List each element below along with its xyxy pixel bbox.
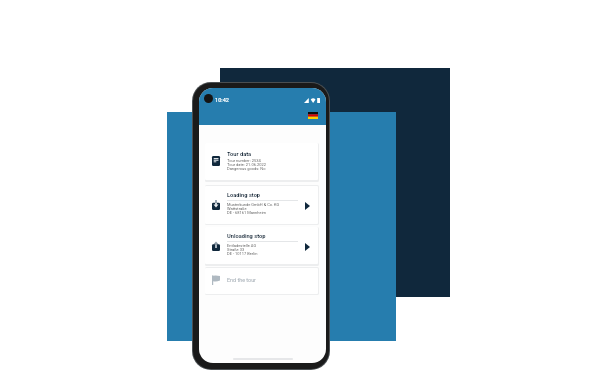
staticText: Tour number: 2534 Tour date: 21.06.2022 …: [227, 158, 266, 171]
staticText: Tour data: [227, 151, 252, 158]
staticText: Musterkunde GmbH & Co. KG Wattstraße DE …: [227, 202, 280, 215]
other: Open stop details: [305, 243, 310, 251]
staticText: Unloading stop: [227, 233, 266, 240]
button[interactable]: End the tour: [205, 268, 318, 294]
button[interactable]: Change language: [306, 110, 320, 121]
staticText: End the tour: [227, 277, 256, 283]
staticText: Loading stop: [227, 192, 261, 199]
other: Open stop details: [305, 202, 310, 210]
staticText: 10:42: [215, 97, 229, 104]
button[interactable]: Unloading stop: [205, 227, 318, 264]
button[interactable]: Tour data: [205, 143, 318, 180]
button[interactable]: Loading stop: [205, 186, 318, 224]
staticText: Entladestelle AG Straße 33 DE - 10117 Be…: [227, 243, 258, 256]
